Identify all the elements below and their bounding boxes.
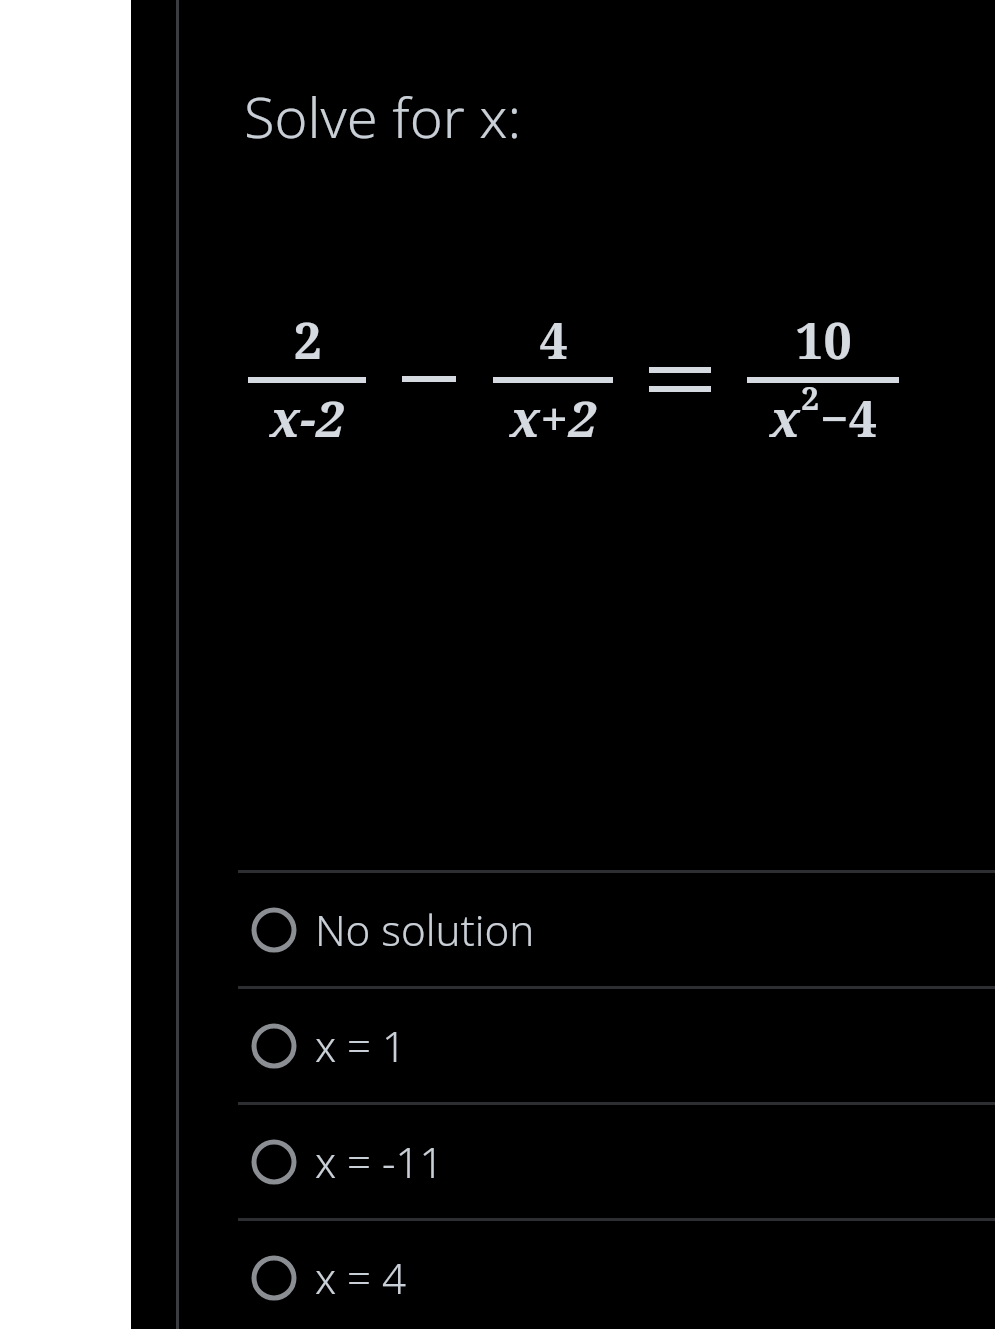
staticText: No solution bbox=[315, 901, 535, 958]
other: Select x = 1 bbox=[251, 1023, 297, 1069]
staticText: x = 4 bbox=[315, 1249, 406, 1306]
staticText: x = 1 bbox=[315, 1017, 406, 1074]
staticText: 2 bbox=[801, 376, 820, 420]
staticText: 2 bbox=[293, 306, 322, 374]
staticText: x−2 bbox=[270, 384, 344, 452]
button[interactable]: Select x = 4 bbox=[0, 1221, 995, 1329]
other: Select x = -11 bbox=[251, 1139, 297, 1185]
staticText: Solve for x: bbox=[244, 78, 522, 154]
button[interactable]: Select x = -11 bbox=[0, 1105, 995, 1218]
staticText: x = -11 bbox=[315, 1133, 444, 1190]
staticText: x+2 bbox=[510, 384, 597, 452]
other: Select x = 4 bbox=[251, 1255, 297, 1301]
button[interactable]: Select No solution bbox=[0, 873, 995, 986]
staticText: 4 bbox=[539, 306, 568, 374]
button[interactable]: Select x = 1 bbox=[0, 989, 995, 1102]
staticText: x bbox=[770, 384, 801, 452]
staticText: −4 bbox=[820, 384, 877, 452]
staticText: 10 bbox=[795, 306, 852, 374]
other: Select No solution bbox=[251, 907, 297, 953]
